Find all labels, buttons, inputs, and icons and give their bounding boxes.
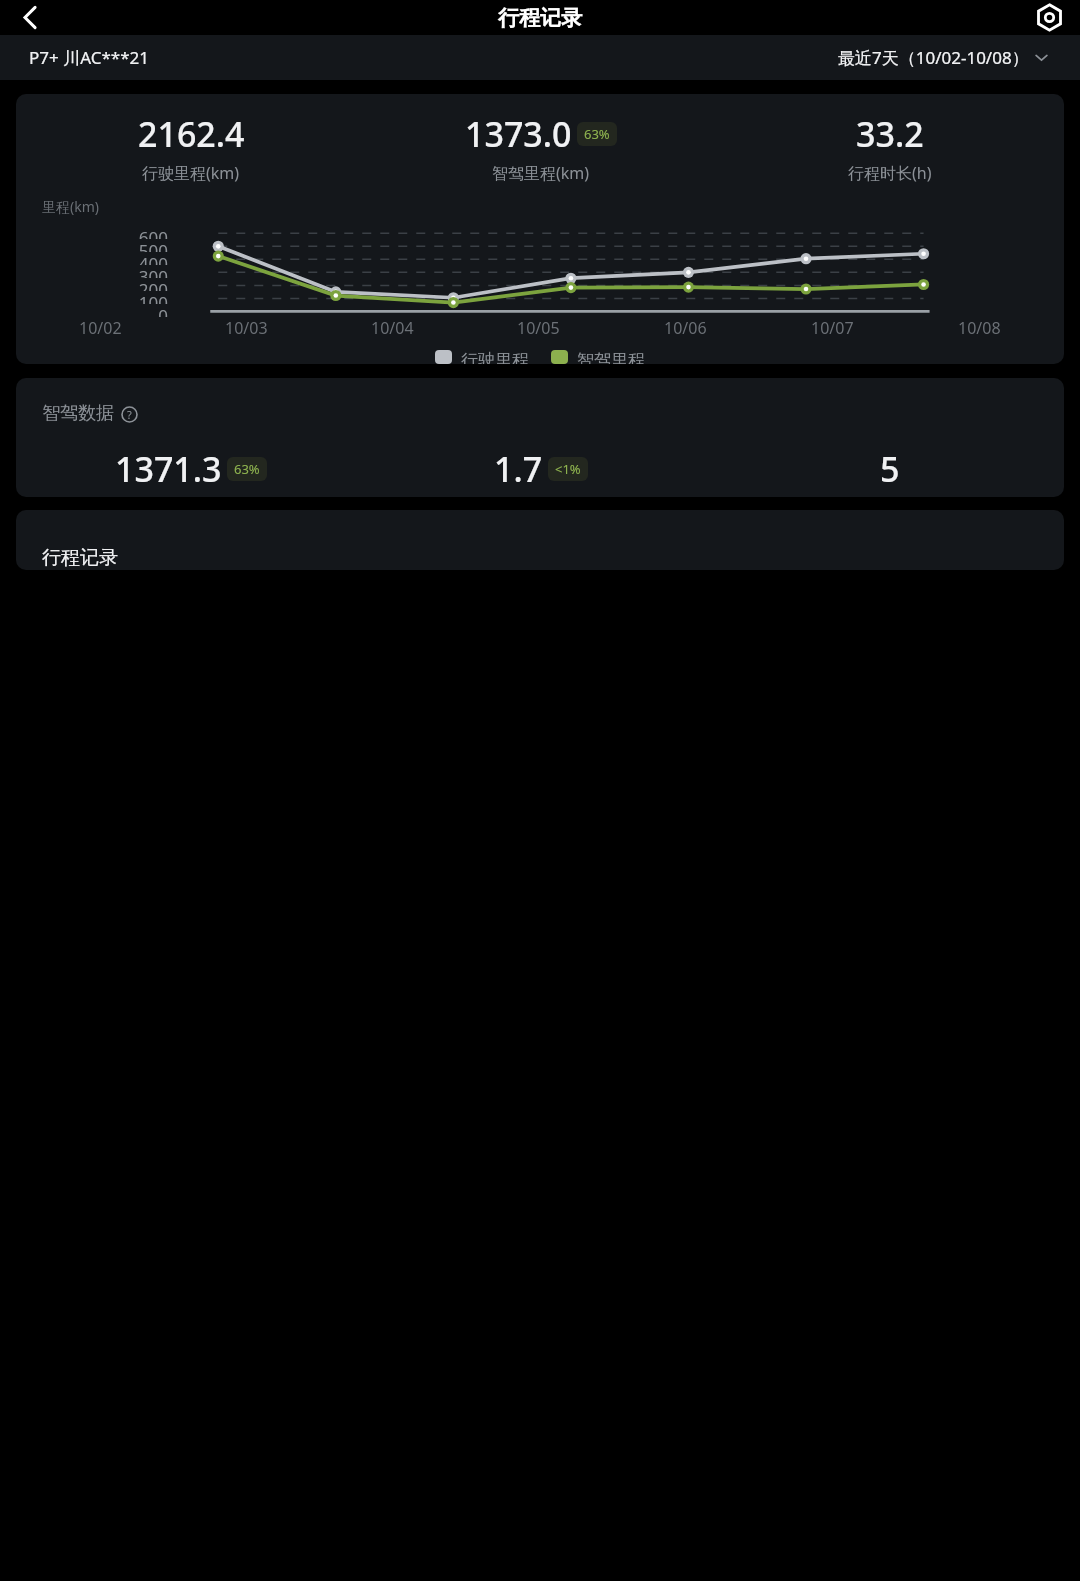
staticText: 2162.4 [138,111,245,157]
staticText: 里程(km) [42,197,99,216]
button[interactable]: 行驶里程 [435,350,529,364]
staticText: 1.7 [494,446,543,492]
staticText: 500 [16,239,168,252]
staticText: 10/06 [664,317,707,339]
button[interactable]: 5 [715,446,1064,497]
button[interactable]: 1371.3 [16,446,366,497]
staticText: 行程时长(h) [848,162,932,184]
staticText: 行程记录 [42,546,118,570]
button[interactable]: Back [12,0,48,35]
staticText: 行驶里程 [461,350,529,364]
staticText: 行程记录 [498,5,582,31]
button[interactable]: Settings [1030,0,1068,35]
staticText: 300 [16,265,168,278]
button[interactable]: 行程记录 [16,510,1064,570]
button[interactable]: 33.2 [715,111,1064,184]
staticText: 10/04 [371,317,414,339]
staticText: 63% [584,125,610,143]
button[interactable]: 智驾里程 [551,350,645,364]
button[interactable]: 2162.4 [16,111,366,184]
button[interactable]: 2162.4 [16,94,1064,364]
button[interactable]: 1.7 [366,446,715,497]
staticText: 最近7天（10/02-10/08） [838,46,1029,69]
button[interactable]: Help [119,404,139,424]
staticText: 智驾里程 [577,350,645,364]
button[interactable]: 1373.0 [366,111,715,184]
staticText: P7+ 川AC***21 [29,46,149,69]
staticText: 10/02 [79,317,122,339]
staticText: 400 [16,252,168,265]
staticText: 行驶里程(km) [142,162,240,184]
staticText: 100 [16,291,168,304]
staticText: 1371.3 [115,446,222,492]
staticText: 10/03 [225,317,268,339]
button[interactable]: 智驾数据 [16,378,1064,497]
staticText: 智驾数据 [42,402,114,425]
staticText: 33.2 [856,111,924,157]
button[interactable]: 最近7天（10/02-10/08） [838,46,1050,69]
staticText: 63% [234,460,260,478]
staticText: 10/05 [517,317,560,339]
staticText: 600 [16,226,168,239]
staticText: 智驾里程(km) [492,162,590,184]
staticText: 200 [16,278,168,291]
staticText: <1% [555,460,581,478]
staticText: 10/08 [958,317,1001,339]
staticText: ? [127,407,132,422]
staticText: 0 [16,304,168,317]
staticText: 5 [880,446,900,492]
staticText: 10/07 [811,317,854,339]
staticText: 1373.0 [465,111,572,157]
